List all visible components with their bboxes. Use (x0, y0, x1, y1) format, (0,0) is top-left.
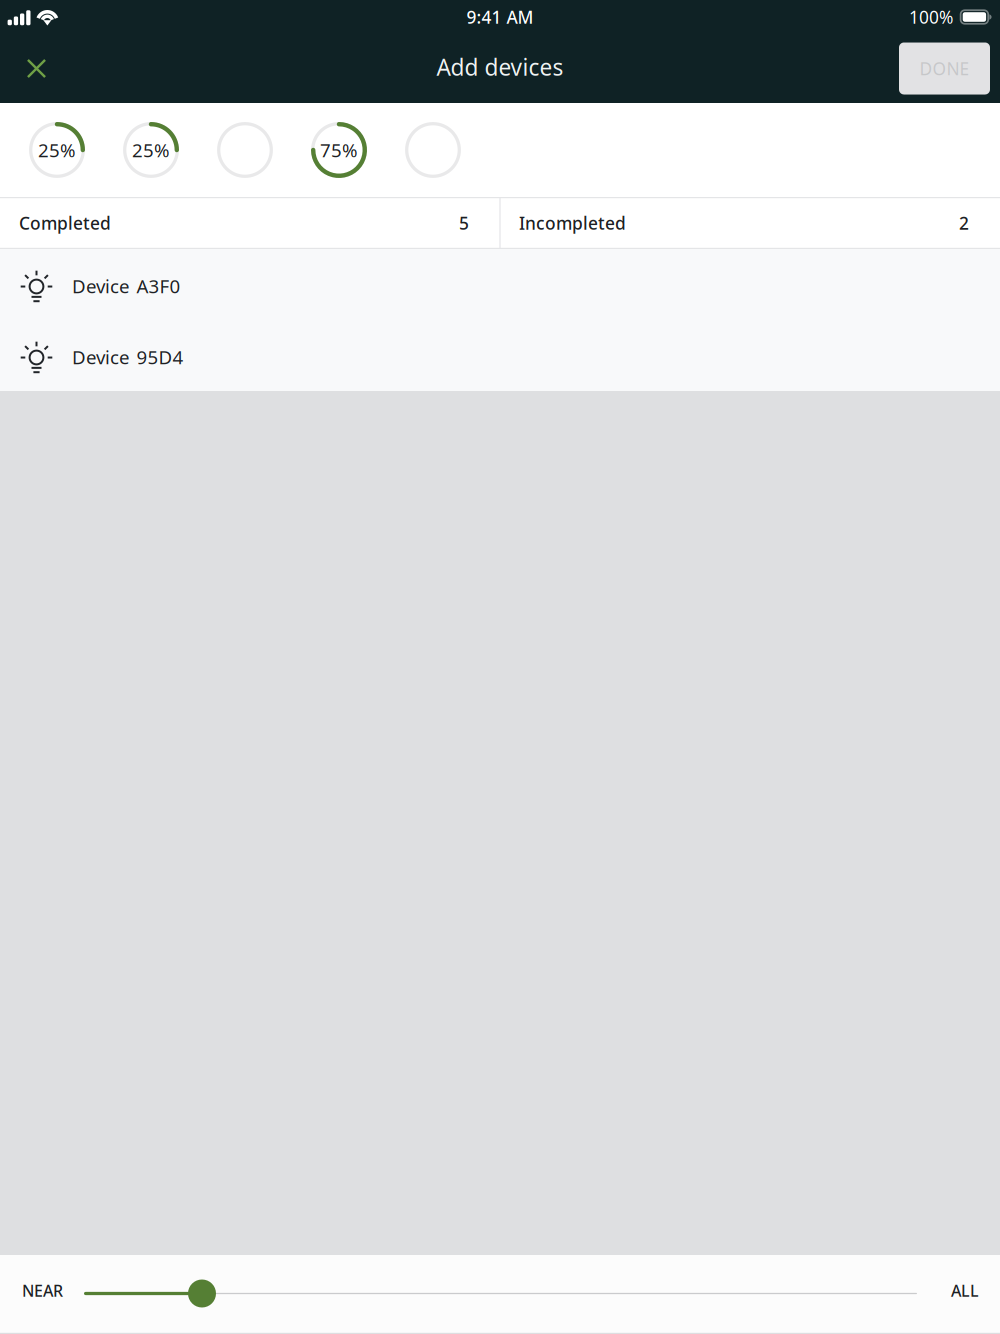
staticText: DONE (919, 57, 969, 80)
staticText: Add devices (436, 52, 563, 82)
staticText: 2 (959, 211, 969, 234)
staticText: Device (72, 274, 130, 298)
staticText: 100% (909, 5, 953, 28)
staticText: 75% (320, 138, 358, 162)
staticText: Completed (19, 211, 111, 234)
staticText: Device (72, 345, 130, 369)
button[interactable]: DONE (899, 42, 990, 94)
staticText: 25% (38, 138, 76, 162)
staticText: 5 (459, 211, 469, 234)
button[interactable]: Incompleted (500, 197, 1000, 249)
staticText: NEAR (22, 1280, 63, 1301)
staticText: 25% (132, 138, 170, 162)
staticText: Incompleted (519, 211, 626, 234)
button[interactable]: Device (0, 249, 1000, 320)
button[interactable]: Close (0, 34, 73, 103)
button[interactable]: Device (0, 320, 1000, 391)
button[interactable]: Completed (0, 197, 500, 249)
staticText: 9:41 AM (466, 5, 533, 28)
staticText: A3F0 (136, 274, 180, 298)
staticText: 95D4 (136, 345, 183, 369)
staticText: ALL (951, 1280, 979, 1301)
